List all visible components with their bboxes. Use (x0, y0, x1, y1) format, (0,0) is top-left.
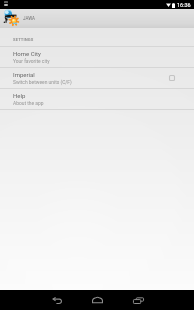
staticText: Your favorite city (13, 58, 50, 64)
staticText: Help (13, 92, 26, 99)
button[interactable]: Imperial (0, 68, 194, 89)
button[interactable]: Home (77, 290, 118, 310)
staticText: Home City (13, 50, 41, 57)
staticText: Switch between units (C/F) (13, 79, 72, 85)
staticText: About the app (13, 100, 44, 106)
button[interactable]: Help (0, 89, 194, 110)
staticText: 16:36 (177, 2, 191, 8)
button[interactable]: Home City (0, 47, 194, 68)
staticText: Imperial (13, 71, 35, 78)
button[interactable]: Back (36, 290, 77, 310)
staticText: SETTINGS (13, 37, 34, 42)
staticText: JAWA (23, 16, 36, 21)
button[interactable]: Recent apps (118, 290, 159, 310)
